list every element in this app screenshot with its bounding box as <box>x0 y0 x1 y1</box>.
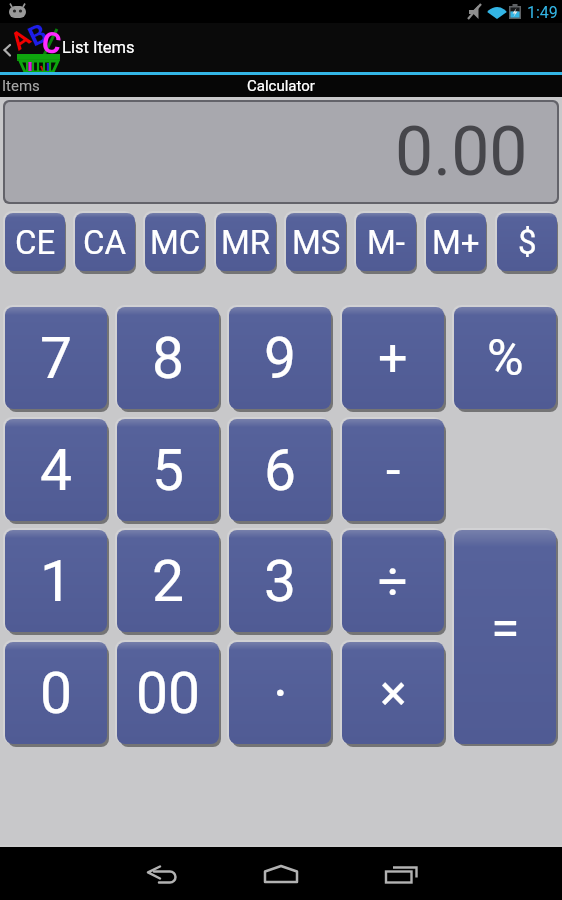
staticText: 5 <box>152 437 185 504</box>
button[interactable]: × <box>342 642 444 744</box>
button[interactable]: 3 <box>229 530 331 632</box>
button[interactable]: 0 <box>5 642 107 744</box>
button[interactable]: 8 <box>117 307 219 409</box>
button[interactable]: ÷ <box>342 530 444 632</box>
staticText: CA <box>83 223 127 262</box>
staticText: MC <box>150 223 201 262</box>
staticText: $ <box>518 223 537 262</box>
button[interactable] <box>0 845 188 900</box>
staticText: 00 <box>136 660 201 727</box>
button[interactable]: 9 <box>229 307 331 409</box>
staticText: Items <box>2 77 40 95</box>
staticText: CE <box>15 223 56 262</box>
button[interactable]: $ <box>497 213 557 271</box>
staticText: 6 <box>264 437 297 504</box>
staticText: 9 <box>264 325 297 392</box>
staticText: = <box>491 598 520 659</box>
staticText: × <box>380 664 407 723</box>
staticText: ÷ <box>378 551 408 612</box>
staticText: · <box>273 660 288 727</box>
staticText: + <box>378 328 408 389</box>
staticText: 0 <box>40 660 73 727</box>
button[interactable]: 1 <box>5 530 107 632</box>
button[interactable]: Calculator <box>247 77 315 95</box>
staticText: 0.00 <box>395 112 528 192</box>
staticText: List Items <box>62 38 135 57</box>
button[interactable]: 7 <box>5 307 107 409</box>
button[interactable] <box>375 845 562 900</box>
button[interactable]: CE <box>5 213 65 271</box>
button[interactable]: 00 <box>117 642 219 744</box>
staticText: M- <box>367 223 405 262</box>
button[interactable]: + <box>342 307 444 409</box>
staticText: 4 <box>40 437 73 504</box>
button[interactable]: MS <box>286 213 346 271</box>
button[interactable] <box>188 845 375 900</box>
staticText: 1 <box>40 548 73 615</box>
button[interactable]: 4 <box>5 419 107 521</box>
staticText: 3 <box>264 548 297 615</box>
button[interactable]: % <box>454 307 556 409</box>
staticText: % <box>487 329 524 388</box>
staticText: Calculator <box>247 77 315 95</box>
staticText: - <box>386 440 401 501</box>
button[interactable]: Items <box>0 75 180 97</box>
staticText: 7 <box>40 325 73 392</box>
staticText: MS <box>292 223 341 262</box>
staticText: C <box>40 25 63 61</box>
button[interactable]: 5 <box>117 419 219 521</box>
staticText: B <box>23 17 53 53</box>
staticText: A <box>5 23 36 56</box>
staticText: 2 <box>152 548 185 615</box>
staticText: M+ <box>432 223 480 262</box>
staticText: 1:49 <box>527 3 558 22</box>
button[interactable]: 2 <box>117 530 219 632</box>
staticText: 8 <box>152 325 185 392</box>
button[interactable]: - <box>342 419 444 521</box>
button[interactable]: · <box>229 642 331 744</box>
button[interactable]: = <box>454 530 556 744</box>
button[interactable]: M+ <box>426 213 486 271</box>
button[interactable]: MC <box>145 213 205 271</box>
button[interactable]: MR <box>216 213 276 271</box>
button[interactable]: 6 <box>229 419 331 521</box>
staticText: MR <box>221 223 271 262</box>
button[interactable]: CA <box>75 213 135 271</box>
button[interactable]: M- <box>356 213 416 271</box>
